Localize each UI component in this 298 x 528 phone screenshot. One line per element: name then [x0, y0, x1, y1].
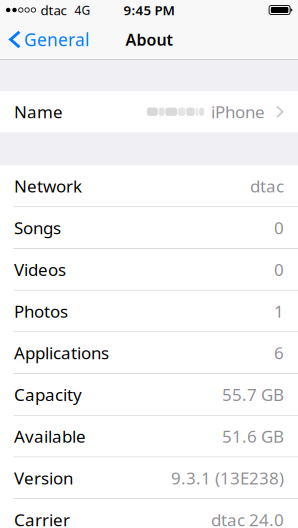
button[interactable]: Capacity: [0, 374, 298, 415]
staticText: About: [125, 29, 172, 50]
staticText: 6: [274, 341, 284, 364]
staticText: 9:45 PM: [123, 1, 174, 19]
staticText: 9.3.1 (13E238): [171, 466, 284, 489]
button[interactable]: Name: [0, 91, 298, 132]
button[interactable]: Version: [0, 457, 298, 498]
button[interactable]: Available: [0, 416, 298, 457]
staticText: Available: [14, 425, 86, 448]
staticText: 1: [274, 300, 284, 323]
staticText: Applications: [14, 341, 109, 364]
staticText: dtac: [41, 1, 67, 19]
button[interactable]: Applications: [0, 332, 298, 373]
staticText: 55.7 GB: [222, 383, 284, 406]
staticText: Network: [14, 174, 82, 198]
staticText: 51.6 GB: [222, 425, 284, 448]
staticText: dtac 24.0: [211, 508, 284, 528]
button[interactable]: Songs: [0, 207, 298, 248]
staticText: Carrier: [14, 508, 70, 528]
staticText: Videos: [14, 258, 66, 281]
button[interactable]: Photos: [0, 291, 298, 332]
button[interactable]: Network: [0, 165, 298, 206]
staticText: Version: [14, 466, 73, 489]
staticText: dtac: [250, 174, 284, 198]
button[interactable]: General: [0, 21, 97, 58]
button[interactable]: Carrier: [0, 499, 298, 528]
staticText: 0: [274, 258, 284, 281]
staticText: Photos: [14, 300, 68, 323]
staticText: 4G: [75, 2, 91, 18]
staticText: Songs: [14, 216, 61, 239]
staticText: Name: [14, 100, 63, 123]
button[interactable]: Videos: [0, 249, 298, 290]
staticText: General: [24, 28, 89, 51]
staticText: 0: [274, 216, 284, 239]
staticText: iPhone: [211, 100, 265, 123]
staticText: Capacity: [14, 383, 82, 406]
